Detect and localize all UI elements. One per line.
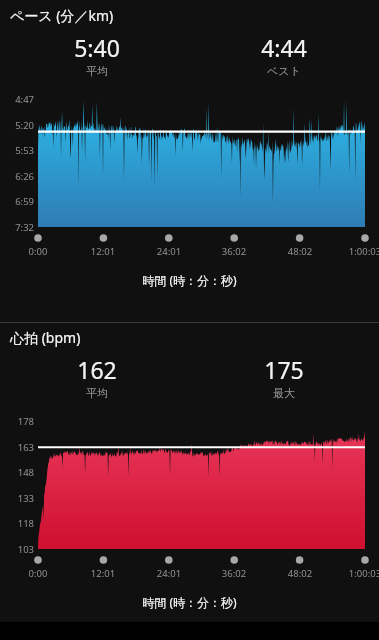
staticText: 175 (234, 354, 334, 385)
staticText: 148 (0, 466, 34, 479)
staticText: 24:01 (139, 567, 199, 580)
staticText: 4:44 (234, 32, 334, 63)
staticText: 24:01 (139, 245, 199, 258)
staticText: 12:01 (73, 567, 133, 580)
button[interactable]: 心拍 (bpm) (0, 322, 379, 622)
staticText: 1:00:03 (335, 567, 379, 580)
staticText: 1:00:03 (335, 245, 379, 258)
staticText: 平均 (47, 386, 147, 400)
staticText: 6:59 (0, 195, 34, 208)
staticText: 103 (0, 543, 34, 556)
staticText: 4:47 (0, 93, 34, 106)
staticText: 時間 (時：分：秒) (0, 272, 379, 288)
staticText: 5:40 (47, 32, 147, 63)
staticText: 最大 (234, 386, 334, 400)
staticText: 36:02 (204, 567, 264, 580)
staticText: ペース (分／km) (10, 6, 114, 25)
staticText: 0:00 (8, 567, 68, 580)
button[interactable]: ペース (分／km) (0, 0, 379, 322)
staticText: 178 (0, 415, 34, 428)
staticText: 133 (0, 492, 34, 505)
staticText: 12:01 (73, 245, 133, 258)
staticText: 48:02 (270, 245, 330, 258)
staticText: 心拍 (bpm) (10, 328, 81, 347)
staticText: 162 (47, 354, 147, 385)
staticText: 5:53 (0, 144, 34, 157)
staticText: 118 (0, 517, 34, 530)
staticText: ベスト (234, 64, 334, 78)
staticText: 7:32 (0, 221, 34, 234)
staticText: 平均 (47, 64, 147, 78)
staticText: 36:02 (204, 245, 264, 258)
staticText: 時間 (時：分：秒) (0, 594, 379, 610)
staticText: 0:00 (8, 245, 68, 258)
staticText: 48:02 (270, 567, 330, 580)
staticText: 163 (0, 441, 34, 454)
staticText: 5:20 (0, 119, 34, 132)
staticText: 6:26 (0, 170, 34, 183)
